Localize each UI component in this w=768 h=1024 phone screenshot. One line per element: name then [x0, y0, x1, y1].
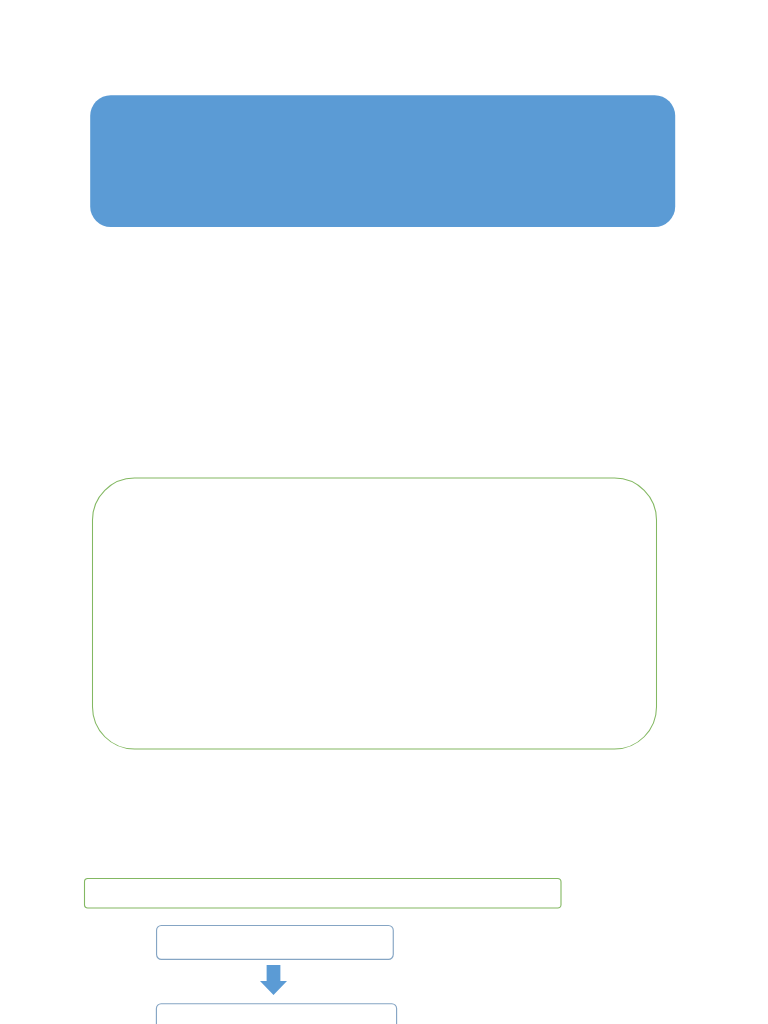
- button[interactable]: Step one: [150, 920, 402, 966]
- other: Down arrow: [260, 965, 287, 995]
- button[interactable]: Title banner: [86, 91, 680, 231]
- button[interactable]: Step two: [150, 998, 406, 1024]
- button[interactable]: Section header: [80, 873, 568, 913]
- button[interactable]: Content card: [90, 474, 660, 754]
